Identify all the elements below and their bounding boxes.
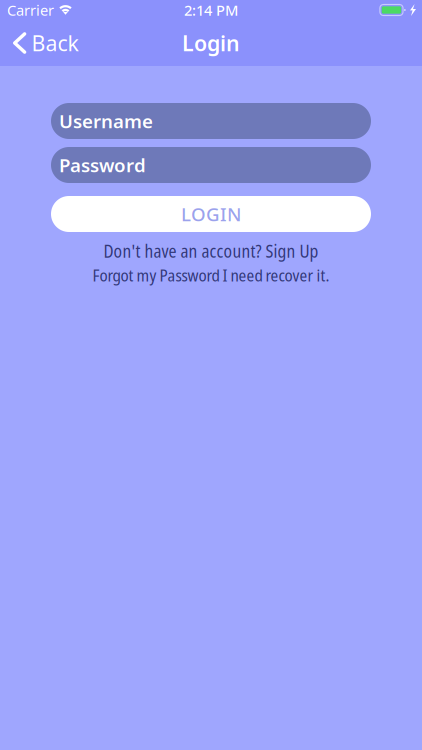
staticText: Back <box>31 29 78 57</box>
staticText: Forgot my Password I need recover it. <box>92 264 329 286</box>
button[interactable]: Don't have an account? Sign Up <box>0 241 422 261</box>
staticText: Username <box>59 109 153 133</box>
staticText: Carrier <box>7 0 54 20</box>
staticText: LOGIN <box>181 202 241 226</box>
staticText: Login <box>182 29 240 57</box>
staticText: Password <box>59 153 146 177</box>
staticText: 2:14 PM <box>184 0 238 20</box>
button[interactable]: LOGIN <box>51 196 371 232</box>
staticText: Don't have an account? Sign Up <box>103 239 318 263</box>
button[interactable]: Back <box>0 20 88 66</box>
button[interactable]: Forgot my Password I need recover it. <box>0 265 422 285</box>
